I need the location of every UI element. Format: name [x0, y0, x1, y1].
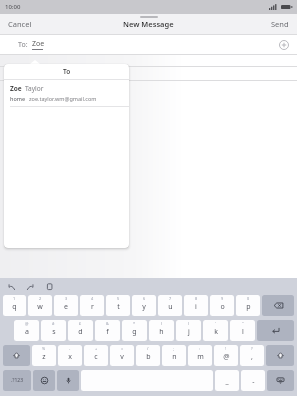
button[interactable]: %	[32, 345, 56, 366]
button[interactable]: Return	[257, 320, 294, 341]
staticText: z	[42, 352, 46, 362]
staticText: 5	[117, 296, 120, 301]
staticText: home	[10, 95, 26, 102]
staticText: m	[197, 352, 204, 362]
staticText: c	[94, 352, 98, 362]
button[interactable]: !	[214, 345, 238, 366]
button[interactable]: 4	[80, 295, 104, 316]
staticText: (	[161, 321, 163, 326]
staticText: g	[132, 327, 137, 337]
button[interactable]: /	[136, 345, 160, 366]
button[interactable]: 1	[3, 295, 26, 316]
button[interactable]: "	[230, 320, 255, 341]
button[interactable]: Dictation	[57, 370, 79, 391]
button[interactable]: 8	[184, 295, 208, 316]
staticText: To:	[18, 40, 28, 50]
button[interactable]: @	[14, 320, 39, 341]
staticText: To	[63, 67, 71, 76]
staticText: 10:00	[5, 3, 21, 11]
staticText: *	[133, 321, 136, 326]
staticText: &	[106, 321, 109, 326]
button[interactable]: _	[215, 370, 239, 391]
button[interactable]: #	[41, 320, 66, 341]
button[interactable]: *	[122, 320, 147, 341]
button[interactable]: Cancel	[0, 16, 40, 32]
staticText: .?123	[11, 377, 24, 384]
staticText: o	[220, 302, 225, 312]
button[interactable]: 0	[236, 295, 260, 316]
button[interactable]: -	[58, 345, 82, 366]
staticText: n	[172, 352, 177, 362]
button[interactable]: Emoji	[33, 370, 55, 391]
staticText: ;	[173, 346, 175, 351]
button[interactable]: Hide keyboard	[267, 370, 294, 391]
staticText: y	[142, 302, 146, 312]
button[interactable]: Undo	[6, 281, 16, 291]
staticText: /	[147, 346, 149, 351]
staticText: 1	[13, 296, 16, 301]
staticText: q	[12, 302, 17, 312]
button[interactable]: +	[84, 345, 108, 366]
button[interactable]: 5	[106, 295, 130, 316]
staticText: Zoe	[32, 39, 45, 49]
button[interactable]: Redo	[25, 281, 35, 291]
staticText: £	[79, 321, 82, 326]
staticText: ,	[251, 352, 253, 362]
staticText: :	[199, 346, 201, 351]
staticText: #	[52, 321, 55, 326]
staticText: p	[246, 302, 251, 312]
button[interactable]: 2	[28, 295, 52, 316]
staticText: 3	[65, 296, 68, 301]
button[interactable]: :	[188, 345, 212, 366]
staticText: d	[78, 327, 83, 337]
staticText: -	[69, 346, 71, 351]
button[interactable]: Backspace	[262, 295, 294, 316]
staticText: v	[120, 352, 124, 362]
button[interactable]: Send	[263, 16, 297, 32]
staticText: a	[25, 327, 29, 337]
staticText: New Message	[123, 19, 174, 29]
button[interactable]: Shift	[3, 345, 30, 366]
staticText: )	[188, 321, 190, 326]
button[interactable]: ;	[162, 345, 186, 366]
button[interactable]: =	[110, 345, 134, 366]
staticText: w	[37, 302, 43, 312]
button[interactable]: Shift	[266, 345, 294, 366]
staticText: t	[117, 302, 120, 312]
button[interactable]: (	[149, 320, 174, 341]
staticText: Cancel	[8, 19, 32, 29]
staticText: "	[242, 321, 244, 326]
staticText: _	[225, 377, 229, 387]
button[interactable]: &	[95, 320, 120, 341]
staticText: ?	[251, 346, 253, 351]
staticText: 7	[169, 296, 172, 301]
staticText: f	[106, 327, 109, 337]
staticText: l	[242, 327, 244, 337]
button[interactable]: 9	[210, 295, 234, 316]
button[interactable]: Paste	[44, 281, 54, 291]
button[interactable]: 6	[132, 295, 156, 316]
button[interactable]: '	[203, 320, 228, 341]
button[interactable]: 3	[54, 295, 78, 316]
staticText: k	[214, 327, 218, 337]
staticText: Taylor	[25, 84, 44, 93]
staticText: Send	[271, 19, 289, 29]
staticText: e	[64, 302, 68, 312]
staticText: r	[91, 302, 94, 312]
button[interactable]: .?123	[3, 370, 31, 391]
staticText: s	[52, 327, 56, 337]
staticText: -	[252, 377, 255, 387]
button[interactable]: ?	[240, 345, 264, 366]
staticText: Zoe	[10, 84, 22, 93]
staticText: 2	[39, 296, 42, 301]
staticText: =	[121, 346, 124, 351]
button[interactable]: -	[241, 370, 265, 391]
button[interactable]: 7	[158, 295, 182, 316]
staticText: b	[146, 352, 151, 362]
button[interactable]: )	[176, 320, 201, 341]
staticText: 8	[195, 296, 198, 301]
button[interactable]: Zoe	[4, 80, 129, 106]
button[interactable]: Add contact	[277, 38, 291, 52]
button[interactable]: £	[68, 320, 93, 341]
